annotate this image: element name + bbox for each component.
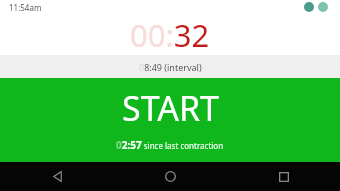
staticText: START (122, 85, 219, 131)
staticText: 11:54am (9, 2, 42, 13)
staticText: 02:57 since last contraction (116, 138, 224, 152)
staticText: 08:49 (interval) (139, 61, 202, 73)
button[interactable]: START (0, 78, 340, 162)
button[interactable]: Home (114, 162, 227, 191)
staticText: 00:32 (130, 14, 210, 55)
button[interactable]: Recent apps (227, 162, 340, 191)
button[interactable]: Back (0, 162, 114, 191)
